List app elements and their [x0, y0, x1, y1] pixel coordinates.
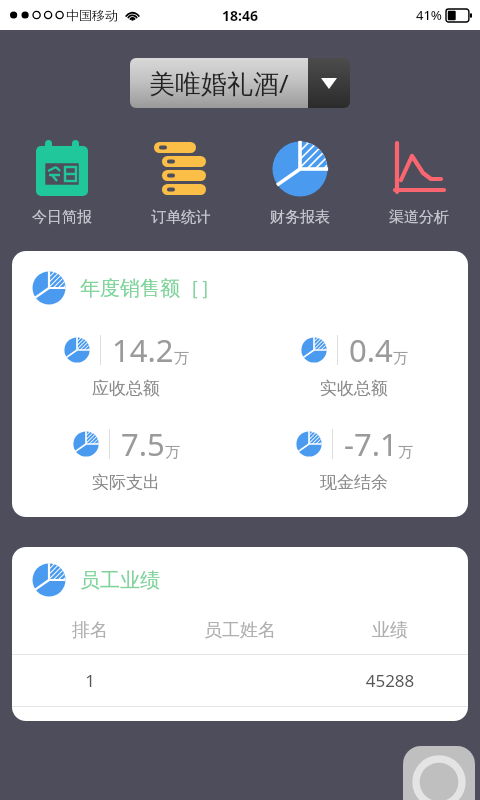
button[interactable]: 渠道分析 [361, 136, 476, 231]
button[interactable]: 0.4 [240, 329, 468, 399]
button[interactable]: 选择门店 [130, 58, 350, 108]
staticText: 实际支出 [92, 472, 160, 493]
staticText: 0.4 [349, 329, 393, 371]
staticText: 今日简报 [32, 208, 92, 227]
staticText: 45288 [322, 669, 458, 692]
staticText: 业绩 [322, 619, 458, 642]
staticText: 41% [416, 6, 442, 24]
staticText: 实收总额 [320, 378, 388, 399]
staticText: 美唯婚礼酒/ [149, 65, 289, 101]
staticText: 中国移动 [66, 7, 118, 23]
staticText: 应收总额 [92, 378, 160, 399]
staticText: 1 [22, 669, 158, 692]
staticText: 渠道分析 [389, 208, 449, 227]
button[interactable]: 7.5 [12, 423, 240, 493]
button[interactable]: 订单统计 [123, 136, 238, 231]
button[interactable]: 财务报表 [242, 136, 357, 231]
staticText: 万 [393, 349, 408, 368]
button[interactable]: 今日简报 [4, 136, 119, 231]
staticText: 员工姓名 [158, 619, 322, 642]
staticText: 18:46 [222, 6, 258, 25]
button[interactable]: -7.1 [240, 423, 468, 493]
button[interactable]: 年度销售额［］ [12, 267, 468, 311]
staticText: 14.2 [112, 329, 174, 371]
button[interactable]: 1 [12, 655, 468, 706]
staticText: 万 [174, 349, 189, 368]
staticText: 财务报表 [270, 208, 330, 227]
button[interactable]: 14.2 [12, 329, 240, 399]
staticText: 7.5 [121, 423, 165, 465]
staticText: 年度销售额［］ [80, 276, 220, 301]
button[interactable]: 返回主页 [403, 746, 475, 800]
staticText: -7.1 [344, 423, 398, 465]
staticText: 现金结余 [320, 472, 388, 493]
button[interactable]: 员工业绩 [12, 547, 468, 603]
staticText: 排名 [22, 619, 158, 642]
staticText: 万 [398, 443, 413, 462]
staticText: 员工业绩 [80, 568, 160, 593]
staticText: 订单统计 [151, 208, 211, 227]
staticText: 万 [165, 443, 180, 462]
